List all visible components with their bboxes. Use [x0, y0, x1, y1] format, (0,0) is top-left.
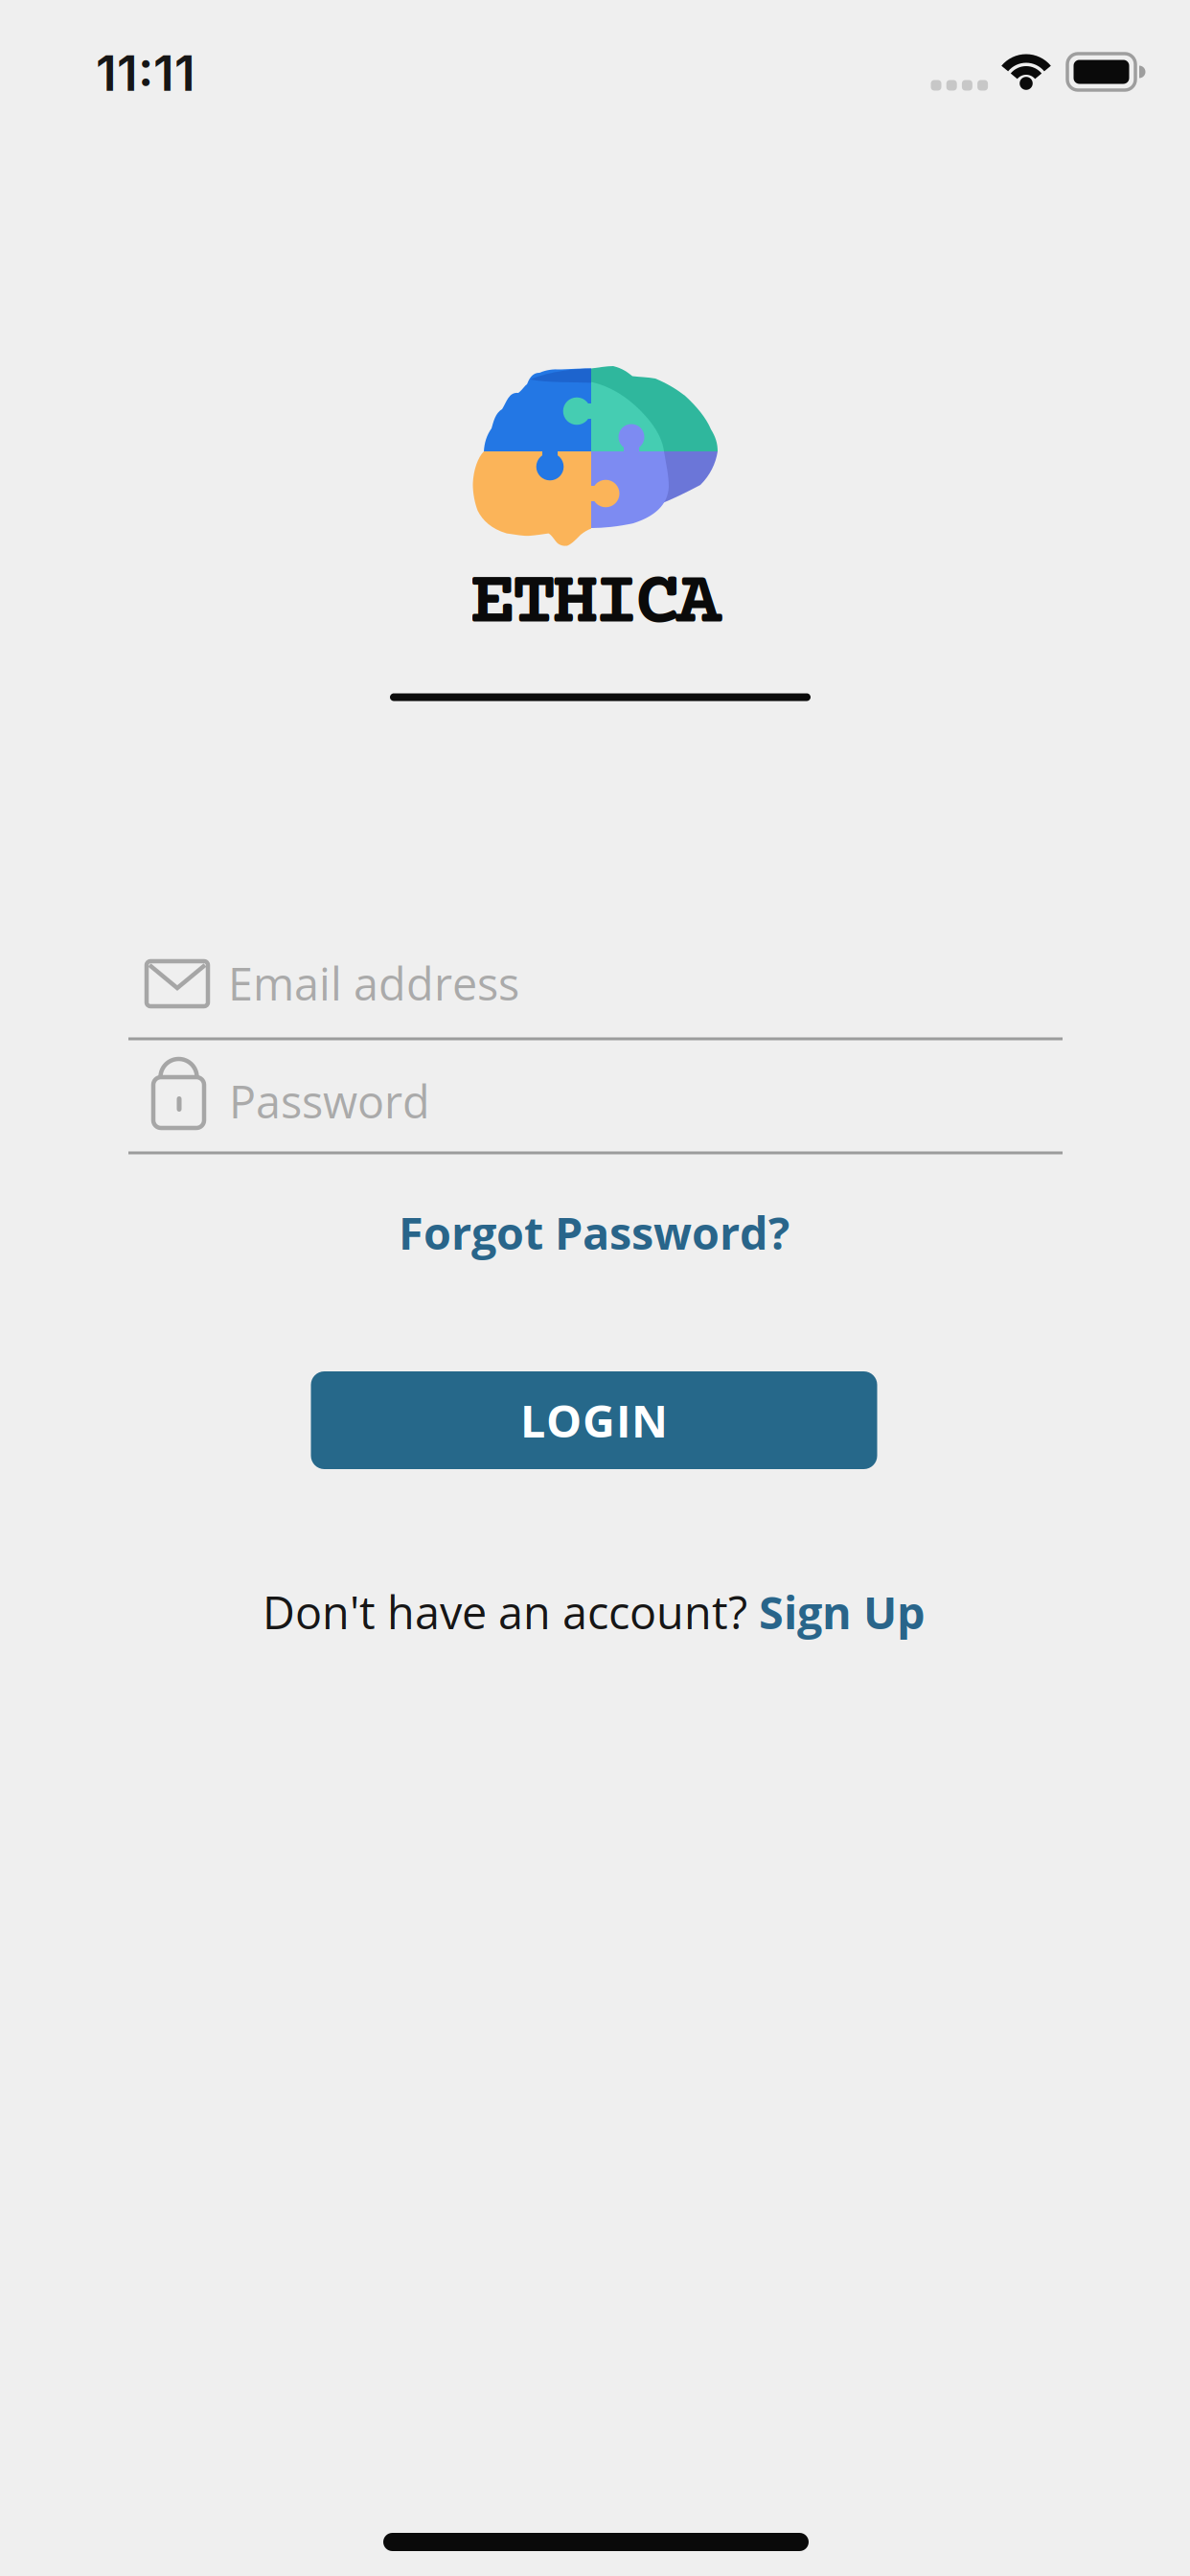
staticText: ETHICA	[470, 562, 722, 648]
button[interactable]: Password	[128, 1038, 1063, 1155]
button[interactable]: Forgot Password?	[399, 1202, 790, 1263]
staticText: Forgot Password?	[399, 1202, 790, 1263]
staticText: Password	[229, 1071, 430, 1132]
staticText: 11:11	[96, 43, 195, 103]
staticText: Don't have an account?	[263, 1581, 759, 1642]
staticText: Sign Up	[759, 1581, 926, 1642]
button[interactable]: Sign Up	[759, 1581, 926, 1642]
staticText: LOGIN	[520, 1390, 668, 1451]
button[interactable]: Email address	[128, 942, 1063, 1041]
staticText: Email address	[228, 953, 519, 1014]
button[interactable]: LOGIN	[311, 1371, 877, 1469]
